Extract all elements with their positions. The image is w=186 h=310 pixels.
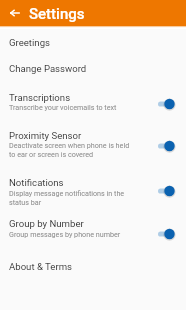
button[interactable]: Group by Number <box>0 208 186 244</box>
staticText: Display message notifications in the sta… <box>9 189 137 207</box>
staticText: Deactivate screen when phone is held to … <box>9 141 137 159</box>
button[interactable]: Proximity Sensor <box>0 118 186 163</box>
staticText: Group messages by phone number <box>9 230 137 238</box>
button[interactable]: Toggle setting <box>153 96 175 112</box>
button[interactable]: Toggle setting <box>153 183 175 199</box>
staticText: Transcriptions <box>9 92 71 103</box>
staticText: Transcribe your voicemails to text <box>9 103 137 111</box>
button[interactable]: Greetings <box>0 30 186 56</box>
staticText: Group by Number <box>9 218 84 229</box>
button[interactable]: Change Password <box>0 56 186 82</box>
staticText: Greetings <box>9 37 50 48</box>
staticText: Notifications <box>9 177 64 188</box>
button[interactable]: Toggle setting <box>153 138 175 154</box>
staticText: Change Password <box>9 63 87 74</box>
button[interactable]: Notifications <box>0 163 186 208</box>
staticText: Settings <box>29 5 85 23</box>
staticText: Proximity Sensor <box>9 130 82 141</box>
button[interactable]: Toggle setting <box>153 226 175 242</box>
button[interactable]: About & Terms <box>0 251 186 277</box>
button[interactable]: Transcriptions <box>0 82 186 118</box>
staticText: About & Terms <box>9 261 73 272</box>
button[interactable]: Back <box>0 0 29 26</box>
